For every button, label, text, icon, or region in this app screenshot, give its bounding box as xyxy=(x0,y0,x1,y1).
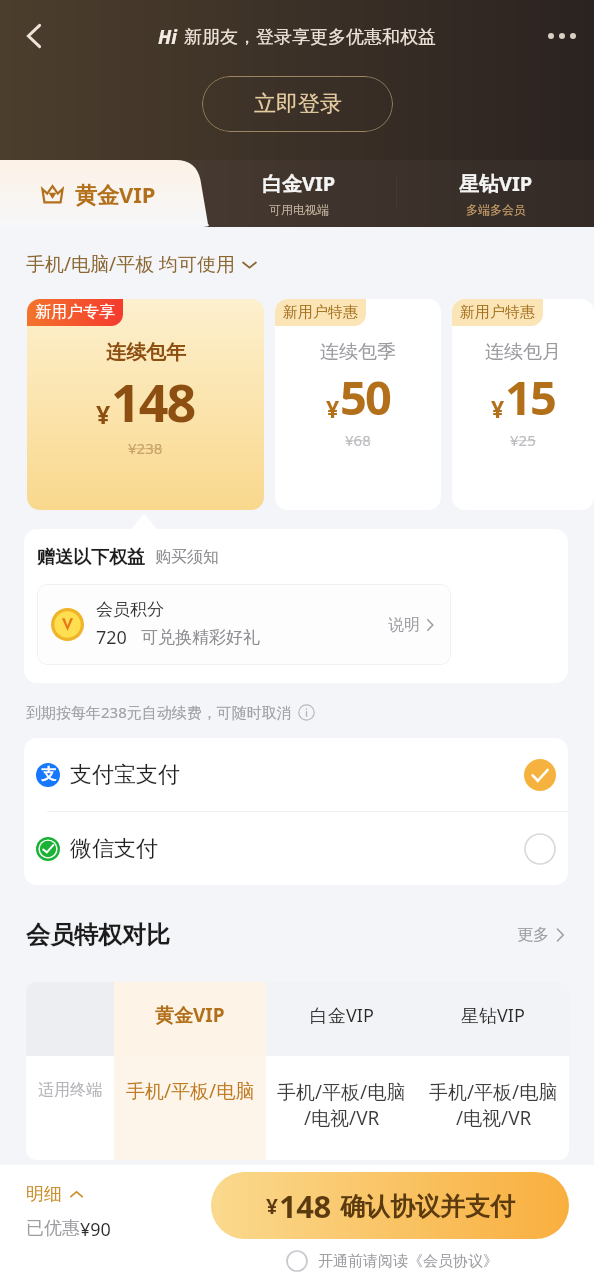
button[interactable]: 星钻VIP xyxy=(397,160,594,227)
staticText: 15 xyxy=(505,365,556,429)
staticText: 黄金VIP xyxy=(155,1002,225,1028)
staticText: 支 xyxy=(41,765,56,784)
staticText: 手机/平板/电脑 xyxy=(429,1079,558,1105)
staticText: ¥238 xyxy=(128,438,163,458)
staticText: 白金VIP xyxy=(310,1003,374,1028)
staticText: /电视/VR xyxy=(304,1105,380,1131)
staticText: 148 xyxy=(279,1185,331,1227)
staticText: 148 xyxy=(111,366,195,437)
staticText: 适用终端 xyxy=(38,1080,102,1100)
staticText: 确认协议并支付 xyxy=(340,1191,515,1222)
button[interactable]: Back xyxy=(10,12,58,60)
staticText: ¥68 xyxy=(345,430,371,450)
button[interactable]: 会员积分 xyxy=(37,584,451,665)
button[interactable]: 开通前请阅读《会员协议》 xyxy=(286,1250,498,1272)
button[interactable]: 微信支付 xyxy=(24,812,568,885)
staticText: 黄金VIP xyxy=(75,179,156,209)
staticText: 支付宝支付 xyxy=(70,761,180,789)
staticText: 连续包年 xyxy=(106,340,186,365)
staticText: 微信支付 xyxy=(70,835,158,863)
staticText: 连续包季 xyxy=(320,340,396,364)
button[interactable]: 手机/电脑/平板 均可使用 xyxy=(26,251,258,277)
staticText: ¥ xyxy=(491,393,505,424)
staticText: 手机/电脑/平板 均可使用 xyxy=(26,251,236,277)
button[interactable]: 白金VIP xyxy=(200,160,397,227)
button[interactable]: ¥ xyxy=(211,1172,569,1239)
staticText: 说明 xyxy=(388,615,420,635)
staticText: 新用户特惠 xyxy=(283,303,358,322)
staticText: 可兑换精彩好礼 xyxy=(141,627,260,648)
button[interactable]: 明细 xyxy=(26,1183,84,1206)
staticText: 星钻VIP xyxy=(461,1003,525,1028)
staticText: /电视/VR xyxy=(456,1105,532,1131)
button[interactable]: 连续包月 xyxy=(452,299,594,510)
button[interactable]: 黄金VIP xyxy=(0,160,212,227)
staticText: 新用户特惠 xyxy=(460,303,535,322)
staticText: 更多 xyxy=(517,925,549,945)
staticText: 已优惠 xyxy=(26,1217,80,1240)
staticText: 手机/平板/电脑 xyxy=(126,1078,255,1104)
staticText: Hi xyxy=(158,24,178,50)
staticText: 可用电视端 xyxy=(269,202,329,217)
staticText: 赠送以下权益 xyxy=(37,546,145,569)
staticText: ¥ xyxy=(326,393,340,424)
staticText: 会员积分 xyxy=(96,599,164,620)
staticText: 多端多会员 xyxy=(466,202,526,217)
staticText: 新用户专享 xyxy=(35,302,115,322)
staticText: ¥90 xyxy=(80,1217,111,1242)
staticText: ¥ xyxy=(266,1192,279,1221)
staticText: 50 xyxy=(340,365,391,429)
staticText: 立即登录 xyxy=(254,90,342,118)
button[interactable]: 连续包季 xyxy=(275,299,441,510)
staticText: 手机/平板/电脑 xyxy=(277,1079,406,1105)
button[interactable]: 立即登录 xyxy=(202,76,393,132)
button[interactable]: More options xyxy=(538,12,586,60)
staticText: 白金VIP xyxy=(262,170,336,197)
button[interactable]: 支 xyxy=(24,738,568,811)
staticText: ¥25 xyxy=(510,430,536,450)
staticText: ¥ xyxy=(96,397,111,431)
staticText: 明细 xyxy=(26,1183,62,1206)
staticText: 新朋友，登录享更多优惠和权益 xyxy=(184,26,436,49)
staticText: 开通前请阅读《会员协议》 xyxy=(318,1252,498,1271)
staticText: 星钻VIP xyxy=(459,170,533,197)
staticText: 购买须知 xyxy=(155,547,219,567)
staticText: 连续包月 xyxy=(485,340,561,364)
staticText: 720 xyxy=(96,625,127,650)
button[interactable]: 连续包年 xyxy=(27,299,264,510)
staticText: 会员特权对比 xyxy=(26,920,170,950)
staticText: 到期按每年238元自动续费，可随时取消 xyxy=(26,702,292,722)
button[interactable]: 更多 xyxy=(517,925,568,945)
